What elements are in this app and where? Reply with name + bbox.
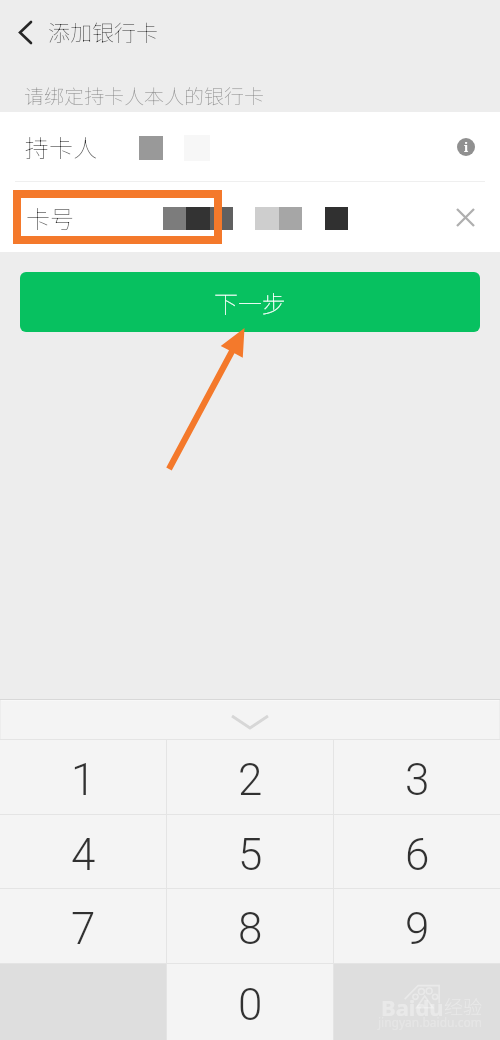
staticText: 卡号 — [26, 200, 74, 235]
staticText: 2 — [238, 754, 263, 806]
button[interactable]: Back — [2, 9, 48, 55]
staticText: 5 — [238, 829, 263, 881]
button[interactable]: 0 — [167, 964, 333, 1040]
staticText: 6 — [405, 829, 430, 881]
button[interactable]: 9 — [334, 889, 500, 963]
staticText: 8 — [238, 903, 263, 955]
staticText: 0 — [238, 979, 263, 1031]
staticText: 7 — [71, 903, 96, 955]
button[interactable]: 7 — [0, 889, 166, 963]
staticText: Baidu — [381, 992, 444, 1022]
button[interactable]: Clear — [448, 200, 482, 234]
staticText: 下一步 — [214, 285, 286, 320]
button[interactable]: 8 — [167, 889, 333, 963]
staticText: 请绑定持卡人本人的银行卡 — [24, 81, 264, 110]
button[interactable]: 1 — [0, 740, 166, 814]
button[interactable]: 4 — [0, 815, 166, 888]
button[interactable]: 持卡人 — [0, 112, 500, 181]
staticText: jingyan.baidu.com — [378, 1014, 482, 1030]
button[interactable]: 下一步 — [20, 272, 480, 332]
staticText: 4 — [71, 829, 96, 881]
button[interactable]: 2 — [167, 740, 333, 814]
staticText: 3 — [405, 754, 430, 806]
button[interactable]: 卡号 — [0, 182, 500, 252]
staticText: 1 — [71, 754, 96, 806]
staticText: 持卡人 — [25, 129, 97, 164]
button[interactable]: 3 — [334, 740, 500, 814]
button[interactable]: 6 — [334, 815, 500, 888]
staticText: 添加银行卡 — [48, 15, 159, 47]
staticText: 9 — [405, 903, 430, 955]
button[interactable]: Info — [451, 132, 481, 162]
button[interactable]: 5 — [167, 815, 333, 888]
staticText: i — [464, 139, 469, 155]
